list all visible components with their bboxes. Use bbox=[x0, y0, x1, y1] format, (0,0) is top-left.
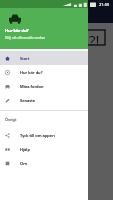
staticText: Hjälp bbox=[20, 147, 30, 152]
staticText: Välj ett alternativ nedan bbox=[5, 35, 46, 40]
staticText: 21:55 bbox=[99, 2, 110, 7]
staticText: Start bbox=[20, 56, 30, 61]
staticText: Om bbox=[20, 161, 27, 166]
staticText: Hjälp bbox=[20, 147, 30, 152]
staticText: Hur kör du? bbox=[20, 70, 43, 75]
button[interactable]: Senaste bbox=[0, 93, 88, 107]
button[interactable]: Start bbox=[0, 51, 88, 65]
staticText: 21:55 bbox=[99, 2, 110, 7]
staticText: Senaste bbox=[20, 98, 36, 103]
staticText: Start bbox=[20, 56, 30, 61]
staticText: Hur kör du? bbox=[5, 28, 29, 34]
button[interactable]: Om bbox=[0, 156, 88, 170]
staticText: Tyck till om appen bbox=[20, 133, 55, 138]
staticText: Mina fordon bbox=[20, 84, 44, 89]
staticText: Välj ett alternativ nedan bbox=[5, 35, 46, 40]
staticText: Övrigt bbox=[5, 117, 17, 122]
staticText: Hur kör du? bbox=[5, 28, 29, 34]
staticText: ?! bbox=[89, 30, 100, 45]
staticText: Om bbox=[20, 161, 27, 166]
staticText: Hur kör du? bbox=[20, 70, 43, 75]
staticText: Senaste bbox=[20, 98, 36, 103]
staticText: Mina fordon bbox=[20, 84, 44, 89]
button[interactable]: Hjälp bbox=[0, 142, 88, 156]
button[interactable]: Tyck till om appen bbox=[0, 128, 88, 142]
staticText: Övrigt bbox=[5, 117, 17, 122]
button[interactable]: Hur kör du? bbox=[0, 65, 88, 79]
button[interactable]: Mina fordon bbox=[0, 79, 88, 93]
staticText: Tyck till om appen bbox=[20, 133, 55, 138]
